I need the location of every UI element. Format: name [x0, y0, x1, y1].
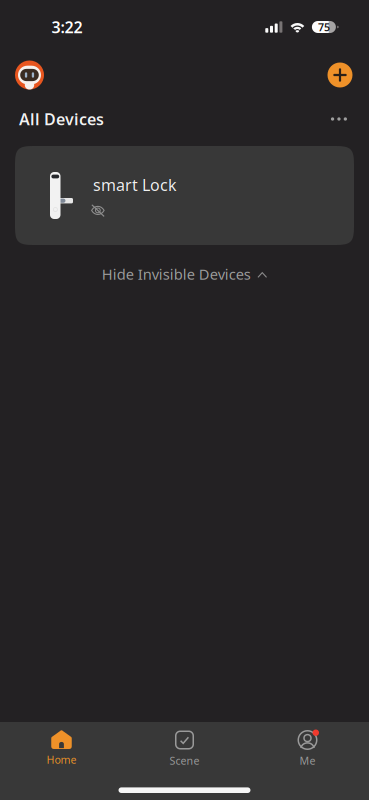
- staticText: Me: [299, 753, 315, 768]
- button[interactable]: Profile: [15, 60, 44, 89]
- staticText: 3:22: [51, 16, 82, 38]
- staticText: 75: [318, 20, 330, 34]
- staticText: smart Lock: [93, 174, 177, 195]
- button[interactable]: Add device: [326, 61, 354, 89]
- button[interactable]: smart Lock: [0, 146, 369, 245]
- button[interactable]: Hide Invisible Devices: [102, 245, 267, 291]
- button[interactable]: Scene: [123, 730, 246, 774]
- staticText: Scene: [169, 753, 199, 768]
- button[interactable]: Home: [0, 730, 123, 774]
- staticText: All Devices: [19, 108, 104, 130]
- button[interactable]: More options: [325, 109, 347, 129]
- button[interactable]: Me: [246, 730, 369, 774]
- staticText: Home: [46, 752, 76, 767]
- staticText: Hide Invisible Devices: [102, 264, 251, 284]
